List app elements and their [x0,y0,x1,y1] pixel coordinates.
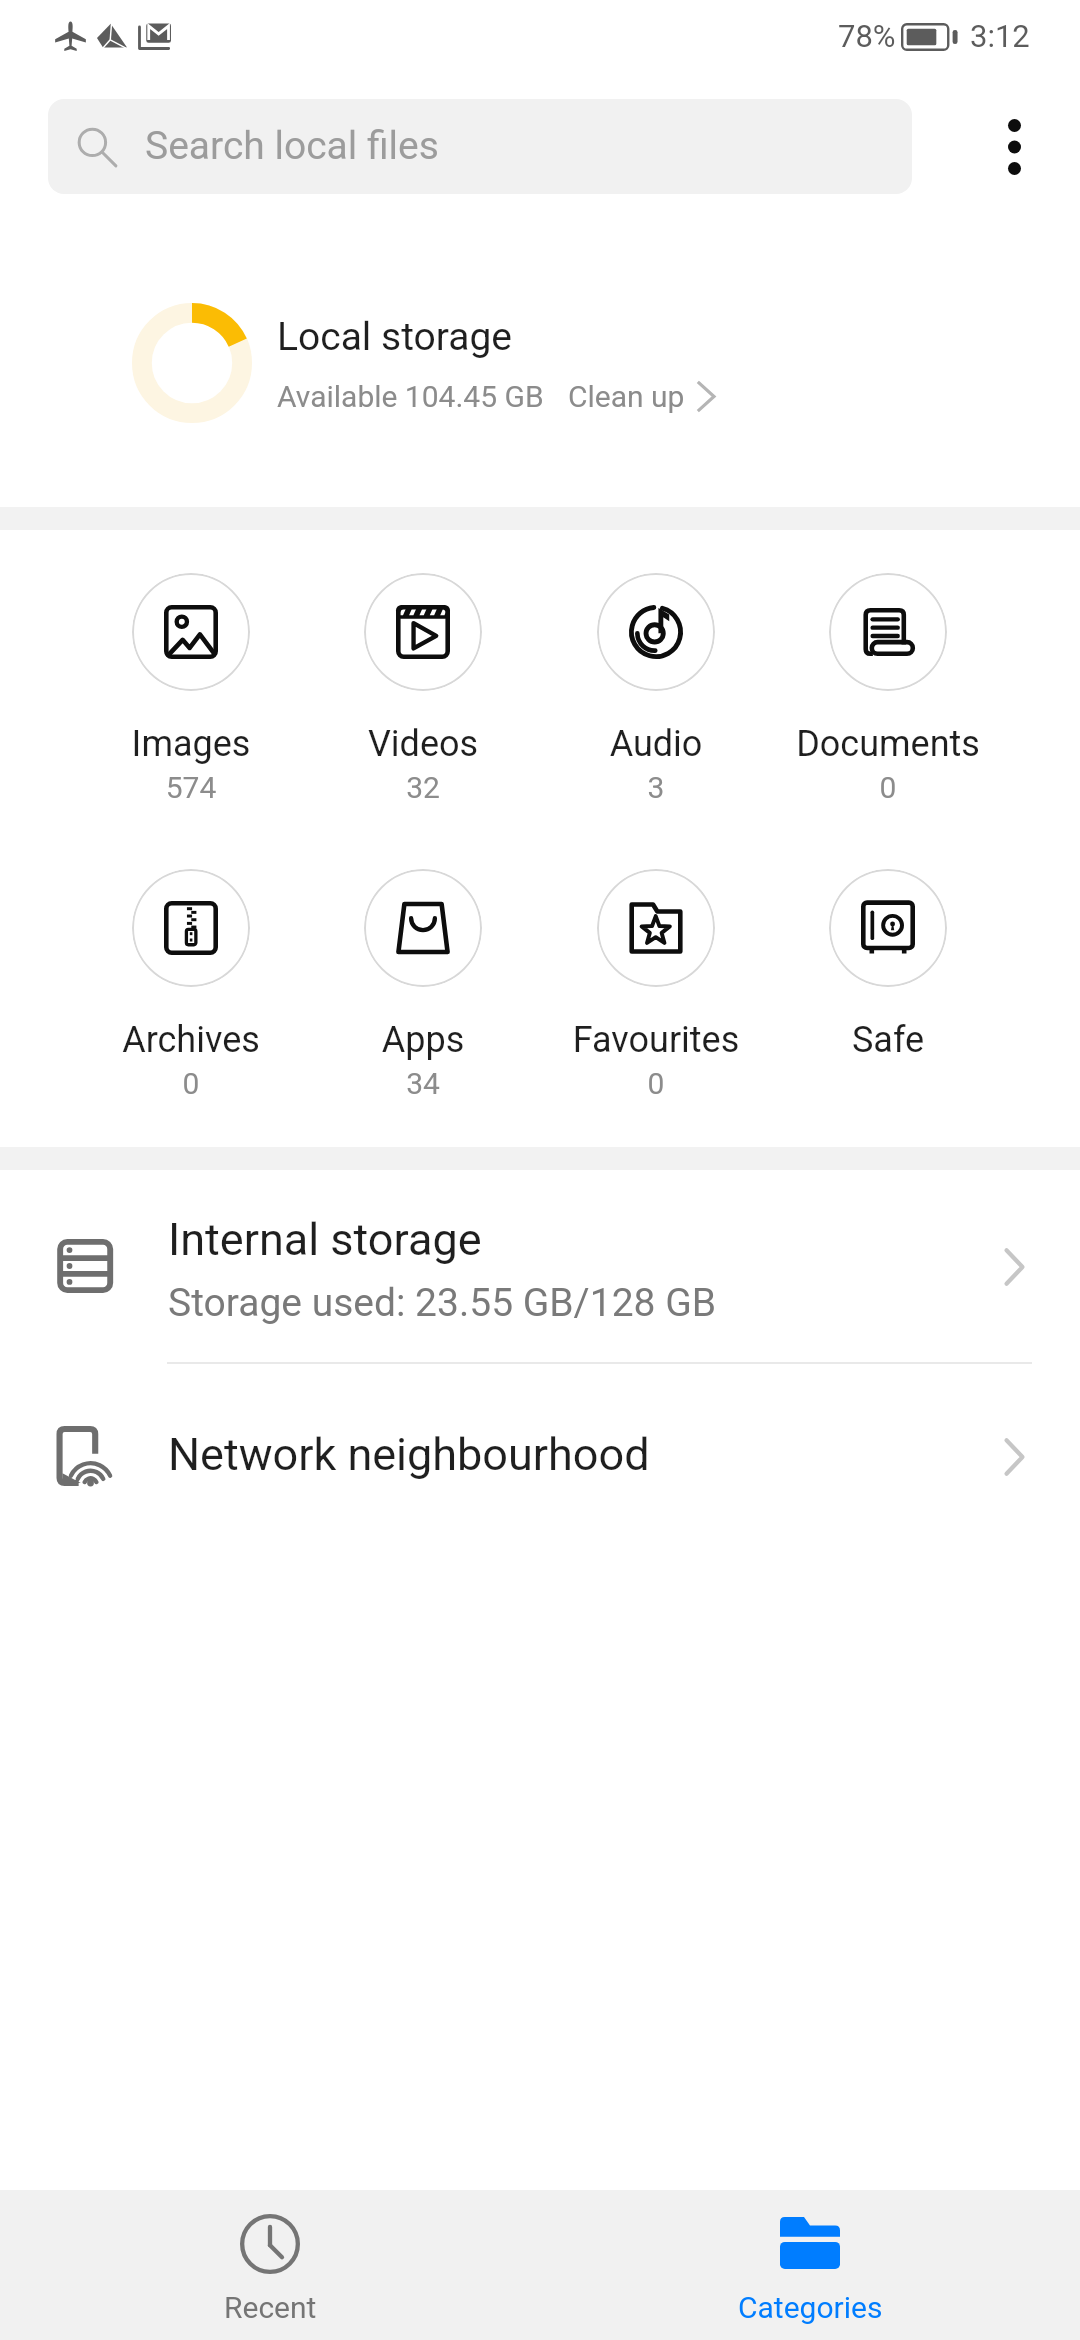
staticText: Images [75,723,307,765]
staticText: 32 [307,770,539,805]
staticText: Safe [772,1019,1004,1061]
button[interactable]: Images [75,573,307,805]
button[interactable]: Categories [610,2190,1010,2340]
button[interactable]: Internal storage [0,1170,1080,1362]
staticText: Storage used: 23.55 GB/128 GB [168,1280,716,1326]
button[interactable]: Recent [70,2190,470,2340]
button[interactable]: Videos [307,573,539,805]
button[interactable]: More options [971,104,1057,190]
staticText: Favourites [540,1019,772,1061]
button[interactable]: Search local files [48,99,912,194]
staticText: 78% [838,18,896,54]
staticText: 0 [75,1066,307,1101]
staticText: Archives [75,1019,307,1061]
staticText: Apps [307,1019,539,1061]
button[interactable]: Audio [540,573,772,805]
staticText: Categories [738,2290,883,2325]
button[interactable]: Apps [307,869,539,1101]
staticText: Clean up [568,379,685,414]
button[interactable]: Documents [772,573,1004,805]
button[interactable]: Local storage [0,215,1080,507]
staticText: Recent [224,2290,317,2325]
staticText: 3 [540,770,772,805]
button[interactable]: Safe [772,869,1004,1061]
staticText: Network neighbourhood [168,1428,650,1481]
staticText: Available 104.45 GB [277,379,544,414]
staticText: 0 [772,770,1004,805]
staticText: Search local files [145,123,439,169]
staticText: Audio [540,723,772,765]
staticText: Documents [772,723,1004,765]
staticText: Internal storage [168,1213,482,1266]
button[interactable]: Favourites [540,869,772,1101]
staticText: 34 [307,1066,539,1101]
staticText: 0 [540,1066,772,1101]
staticText: Local storage [277,314,513,360]
staticText: 574 [75,770,307,805]
button[interactable]: Archives [75,869,307,1101]
button[interactable]: Network neighbourhood [0,1364,1080,1550]
staticText: Videos [307,723,539,765]
staticText: 3:12 [970,18,1030,54]
